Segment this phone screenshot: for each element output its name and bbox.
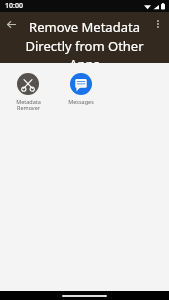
staticText: Messages xyxy=(68,98,94,105)
button[interactable]: Messages xyxy=(59,71,103,107)
staticText: Remove Metadata xyxy=(29,18,140,36)
button[interactable]: Home gesture xyxy=(62,295,107,297)
other: Messages xyxy=(70,73,92,95)
button[interactable]: Back xyxy=(2,15,20,33)
staticText: 10:00 xyxy=(5,1,23,11)
other: Metadata Remover xyxy=(17,73,39,95)
staticText: Metadata Remover xyxy=(16,98,41,112)
staticText: Directly from Other Apps xyxy=(14,37,155,63)
button[interactable]: More options xyxy=(149,15,167,33)
button[interactable]: Metadata Remover xyxy=(6,71,50,114)
